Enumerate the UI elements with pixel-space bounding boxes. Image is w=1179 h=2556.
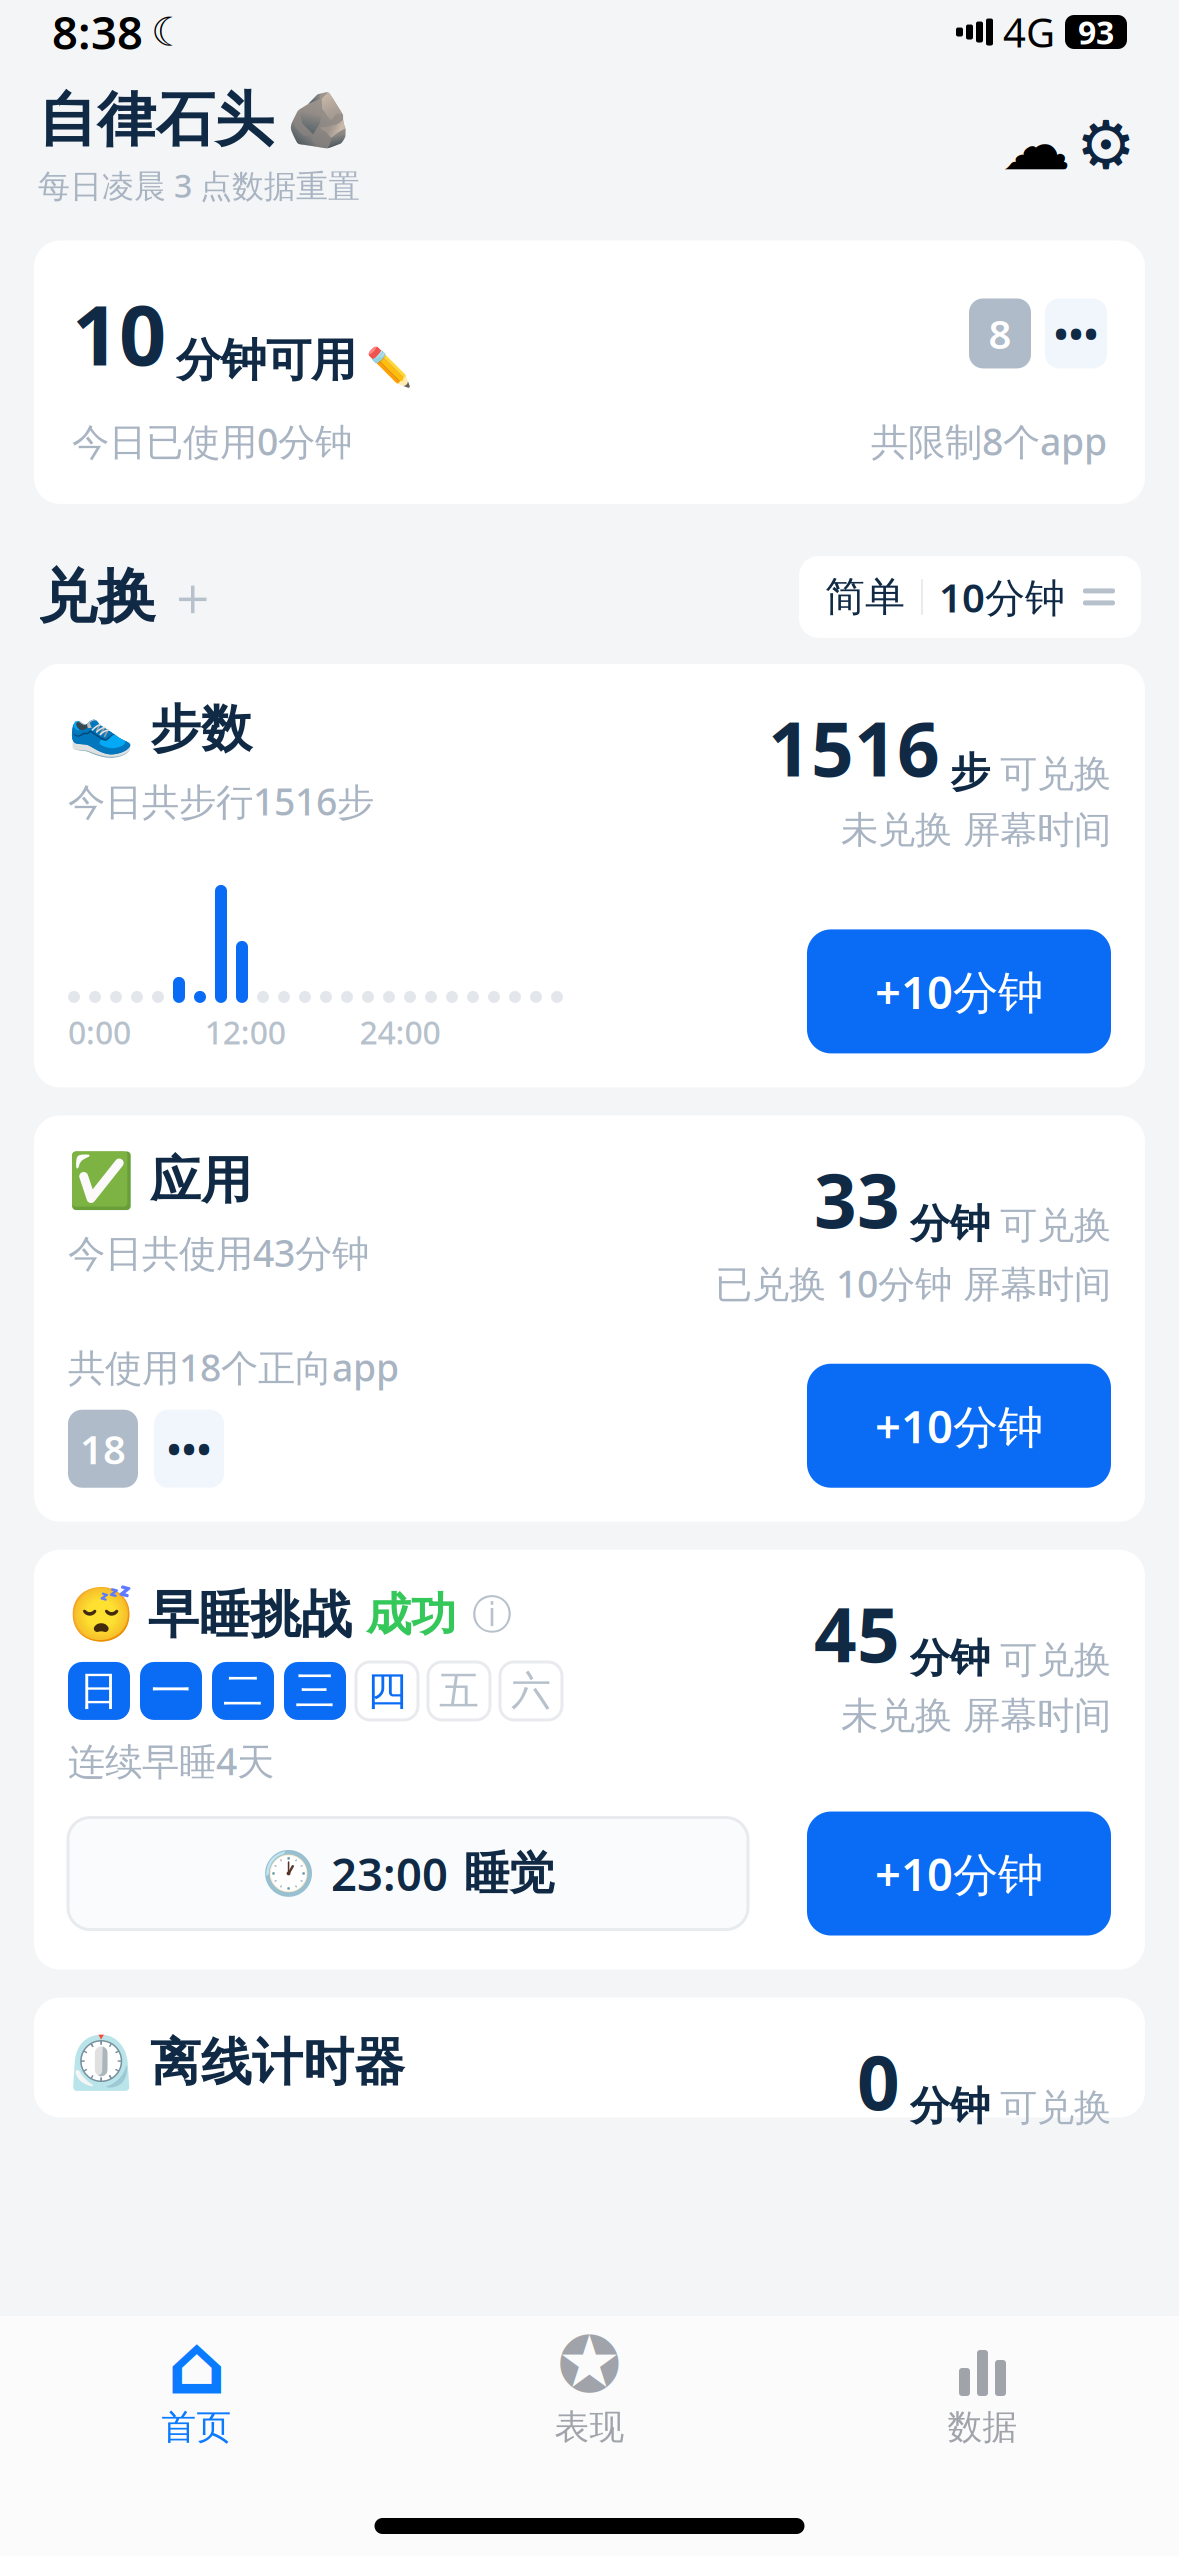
staticText: 23:00 <box>331 1843 448 1904</box>
staticText: ✪ <box>557 2321 622 2409</box>
staticText: 分钟 <box>910 1199 990 1248</box>
staticText: 分钟可用 <box>176 333 356 388</box>
staticText: 可兑换 <box>1000 751 1111 797</box>
staticText: ⓘ <box>472 1590 512 1639</box>
staticText: 今日已使用0分钟 <box>72 416 352 466</box>
staticText: 10 <box>72 279 166 388</box>
button[interactable]: +10分钟 <box>807 1364 1111 1488</box>
staticText: +10分钟 <box>875 1843 1043 1904</box>
staticText: 三 <box>295 1666 335 1715</box>
button[interactable]: iCloud 同步 <box>1001 110 1071 180</box>
staticText: 简单 <box>825 572 905 621</box>
button[interactable]: 18 <box>68 1410 138 1488</box>
staticText: 24:00 <box>359 1011 440 1053</box>
staticText: 成功 <box>366 1587 456 1643</box>
staticText: 今日共步行1516步 <box>68 776 374 826</box>
button[interactable]: 更多应用 <box>1045 298 1107 368</box>
staticText: 93 <box>1078 11 1114 53</box>
staticText: 4G <box>1003 5 1055 58</box>
staticText: 早睡挑战 <box>148 1584 352 1646</box>
staticText: 未兑换 屏幕时间 <box>841 807 1111 853</box>
staticText: 一 <box>151 1666 191 1715</box>
staticText: 可兑换 <box>1000 2085 1111 2131</box>
staticText: 分钟 <box>910 2082 990 2131</box>
staticText: 已兑换 10分钟 屏幕时间 <box>715 1259 1111 1308</box>
staticText: 四 <box>367 1666 407 1715</box>
staticText: 可兑换 <box>1000 1637 1111 1683</box>
button[interactable]: 8 <box>969 298 1031 368</box>
staticText: 六 <box>511 1666 551 1715</box>
staticText: ＋ <box>166 564 219 630</box>
staticText: 1516 <box>768 698 940 797</box>
staticText: 8:38 <box>52 2 143 62</box>
staticText: ⚙ <box>1076 107 1136 183</box>
staticText: ☁ <box>1001 106 1070 185</box>
staticText: 0:00 <box>68 1011 131 1053</box>
button[interactable]: 编辑时长 <box>366 346 412 388</box>
staticText: 0 <box>857 2031 900 2131</box>
staticText: ••• <box>1053 307 1098 360</box>
button[interactable]: +10分钟 <box>807 929 1111 1053</box>
button[interactable]: 🕐 <box>68 1817 748 1929</box>
staticText: 12:00 <box>205 1011 286 1053</box>
staticText: 离线计时器 <box>150 2031 405 2094</box>
staticText: 二 <box>223 1666 263 1715</box>
staticText: ⏲️ <box>68 2032 134 2093</box>
staticText: 45 <box>814 1584 900 1683</box>
staticText: 分钟 <box>910 1634 990 1683</box>
button[interactable]: 简单 <box>799 556 1141 638</box>
staticText: 步 <box>950 748 990 797</box>
staticText: 👟 <box>68 699 134 759</box>
staticText: 每日凌晨 3 点数据重置 <box>38 164 360 207</box>
staticText: 日 <box>79 1666 119 1715</box>
staticText: 未兑换 屏幕时间 <box>841 1693 1111 1739</box>
staticText: 今日共使用43分钟 <box>68 1228 369 1277</box>
staticText: +10分钟 <box>875 1396 1043 1456</box>
staticText: 兑换 <box>38 561 156 633</box>
button[interactable]: +10分钟 <box>807 1811 1111 1935</box>
staticText: 睡觉 <box>464 1846 554 1901</box>
button[interactable]: 更多正向应用 <box>154 1410 224 1488</box>
staticText: 10分钟 <box>939 570 1065 623</box>
staticText: ••• <box>166 1422 211 1475</box>
staticText: 😴 <box>68 1584 134 1645</box>
staticText: ✅ <box>68 1150 134 1211</box>
staticText: 共限制8个app <box>871 416 1107 466</box>
staticText: 🕐 <box>262 1849 315 1898</box>
staticText: +10分钟 <box>875 961 1043 1021</box>
staticText: 共使用18个正向app <box>68 1342 399 1392</box>
staticText: 自律石头 <box>38 84 274 156</box>
button[interactable]: ✪ <box>393 2316 786 2449</box>
staticText: ✏️ <box>366 346 412 388</box>
staticText: ⌂ <box>167 2318 226 2412</box>
button[interactable]: 数据 <box>786 2316 1179 2449</box>
staticText: 五 <box>439 1666 479 1715</box>
staticText: 33 <box>814 1149 900 1249</box>
button[interactable]: 设置 <box>1071 110 1141 180</box>
staticText: 应用 <box>150 1149 252 1212</box>
button[interactable]: 添加兑换项 <box>156 567 219 627</box>
staticText: 数据 <box>947 2406 1017 2449</box>
staticText: 🪨 <box>286 90 352 150</box>
staticText: 步数 <box>150 698 252 760</box>
staticText: ☾ <box>151 9 187 55</box>
staticText: 8 <box>988 307 1011 360</box>
button[interactable]: ⌂ <box>0 2316 393 2449</box>
staticText: 18 <box>80 1422 126 1475</box>
button[interactable]: 早睡挑战说明 <box>470 1593 514 1637</box>
staticText: 连续早睡4天 <box>68 1736 274 1786</box>
staticText: 首页 <box>161 2406 231 2449</box>
staticText: 可兑换 <box>1000 1203 1111 1249</box>
staticText: 表现 <box>554 2406 624 2449</box>
